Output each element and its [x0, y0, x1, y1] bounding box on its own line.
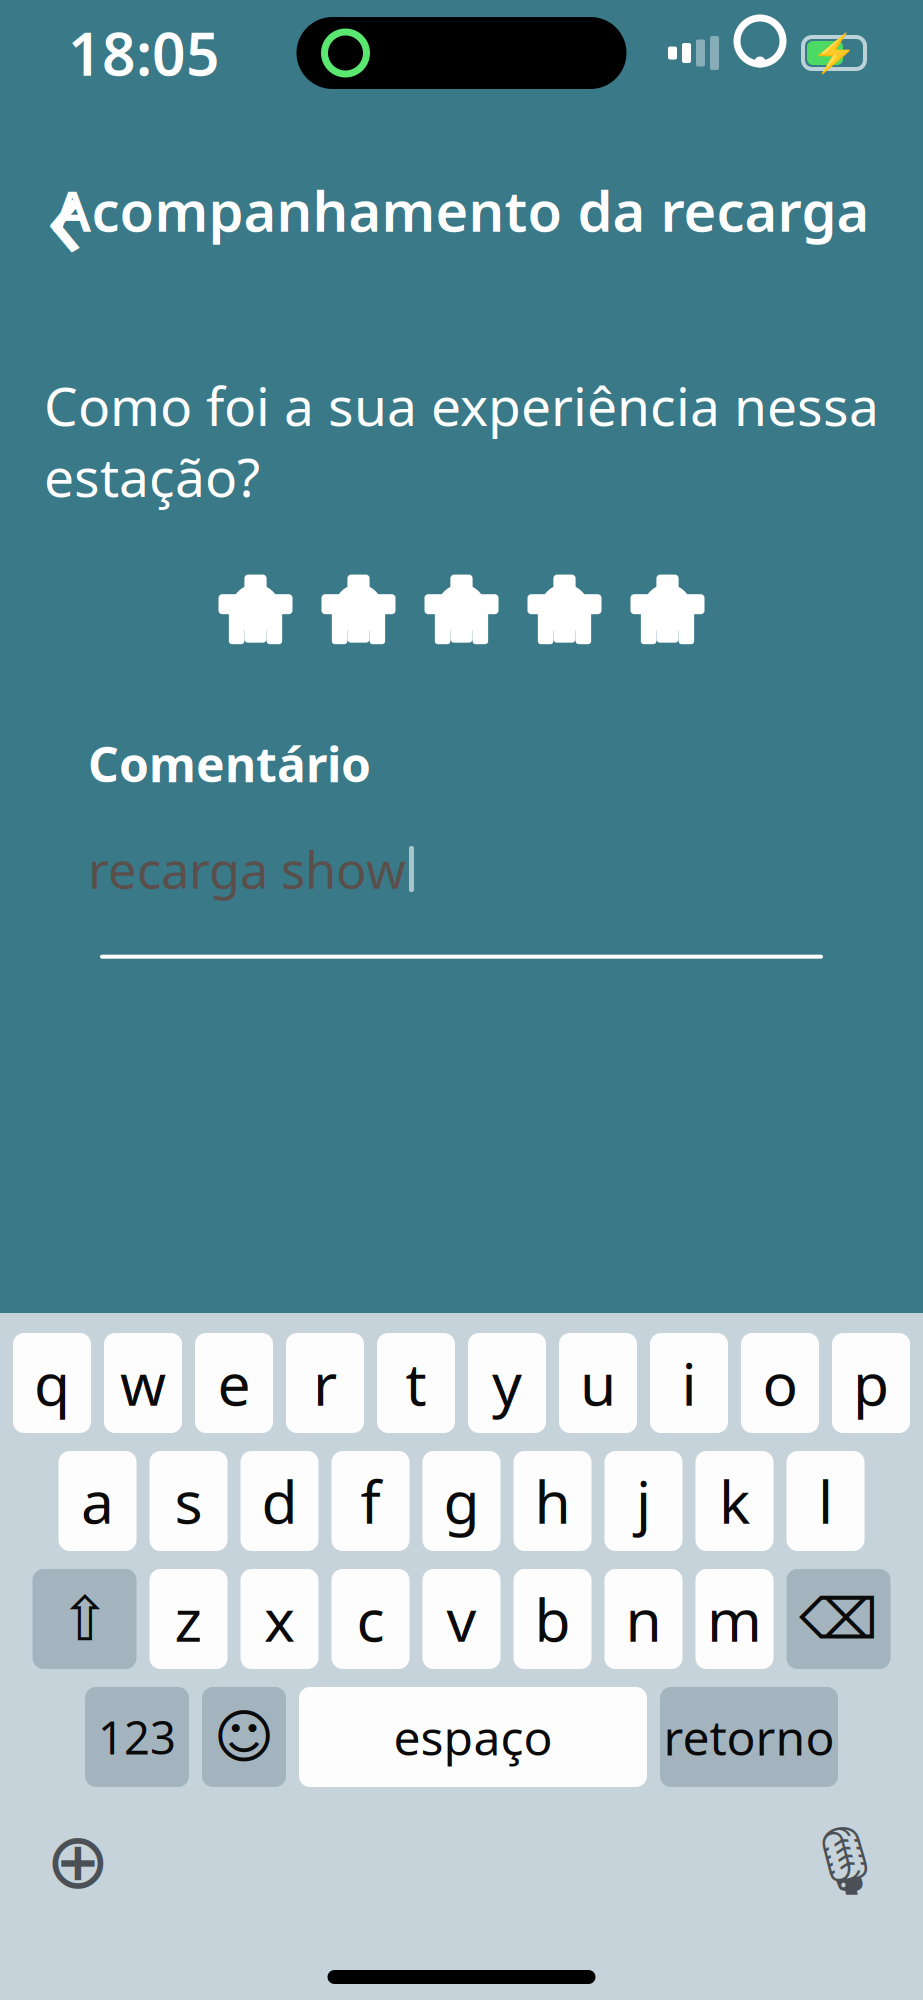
button[interactable]: h	[513, 1451, 591, 1551]
staticText: j	[636, 1462, 651, 1540]
staticText: ⌫	[799, 1587, 878, 1651]
staticText: q	[34, 1344, 70, 1422]
button[interactable]: c	[331, 1569, 409, 1669]
button[interactable]: Maiúsculas	[32, 1569, 136, 1669]
button[interactable]: Ditado	[805, 1821, 885, 1901]
button[interactable]: v	[422, 1569, 500, 1669]
button[interactable]: y	[468, 1333, 546, 1433]
staticText: v	[446, 1580, 476, 1658]
button[interactable]: l	[786, 1451, 864, 1551]
staticText: k	[719, 1462, 750, 1540]
staticText: ⚡	[811, 32, 857, 74]
staticText: p	[853, 1344, 889, 1422]
button[interactable]: 2 estrelas	[321, 572, 395, 646]
button[interactable]: t	[377, 1333, 455, 1433]
button[interactable]: Apagar	[786, 1569, 890, 1669]
button[interactable]: m	[695, 1569, 773, 1669]
button[interactable]: Voltar	[22, 167, 108, 253]
staticText: y	[492, 1344, 522, 1422]
staticText: h	[534, 1462, 570, 1540]
staticText: g	[443, 1462, 479, 1540]
button[interactable]: recarga show	[0, 795, 923, 903]
staticText: Como foi a sua experiência nessa estação…	[44, 370, 879, 512]
staticText: 123	[98, 1707, 176, 1767]
button[interactable]: Mudar idioma	[38, 1821, 118, 1901]
button[interactable]: 4 estrelas	[527, 572, 601, 646]
button[interactable]: k	[695, 1451, 773, 1551]
staticText: x	[264, 1580, 295, 1658]
staticText: z	[174, 1580, 202, 1658]
button[interactable]: f	[331, 1451, 409, 1551]
button[interactable]: s	[149, 1451, 227, 1551]
staticText: n	[625, 1580, 661, 1658]
staticText: b	[534, 1580, 570, 1658]
button[interactable]: 1 estrela	[218, 572, 292, 646]
staticText: ☺	[213, 1704, 274, 1770]
staticText: 18:05	[68, 14, 220, 92]
button[interactable]: i	[650, 1333, 728, 1433]
staticText: l	[818, 1462, 833, 1540]
staticText: Comentário	[88, 732, 371, 795]
staticText: ⇧	[59, 1584, 110, 1654]
button[interactable]: Emoji	[202, 1687, 286, 1787]
staticText: retorno	[663, 1705, 834, 1769]
button[interactable]: espaço	[299, 1687, 647, 1787]
staticText: 🎙	[802, 1823, 887, 1899]
button[interactable]: z	[149, 1569, 227, 1669]
staticText: w	[120, 1344, 166, 1422]
staticText: f	[360, 1462, 380, 1540]
staticText: m	[707, 1580, 762, 1658]
button[interactable]: x	[240, 1569, 318, 1669]
staticText: t	[405, 1344, 426, 1422]
button[interactable]: r	[286, 1333, 364, 1433]
button[interactable]: retorno	[660, 1687, 838, 1787]
staticText: ‹	[45, 125, 85, 295]
staticText: espaço	[393, 1705, 552, 1769]
staticText: c	[356, 1580, 384, 1658]
button[interactable]: j	[604, 1451, 682, 1551]
button[interactable]: b	[513, 1569, 591, 1669]
staticText: ⊕	[45, 1817, 110, 1905]
staticText: r	[313, 1344, 337, 1422]
button[interactable]: 123	[85, 1687, 189, 1787]
button[interactable]: p	[832, 1333, 910, 1433]
button[interactable]: n	[604, 1569, 682, 1669]
button[interactable]: e	[195, 1333, 273, 1433]
button[interactable]: a	[58, 1451, 136, 1551]
staticText: a	[81, 1462, 114, 1540]
button[interactable]: g	[422, 1451, 500, 1551]
button[interactable]: q	[13, 1333, 91, 1433]
button[interactable]: o	[741, 1333, 819, 1433]
staticText: s	[174, 1462, 202, 1540]
staticText: u	[580, 1344, 616, 1422]
staticText: e	[217, 1344, 250, 1422]
staticText: o	[762, 1344, 797, 1422]
button[interactable]: d	[240, 1451, 318, 1551]
button[interactable]: 5 estrelas	[630, 572, 704, 646]
button[interactable]: u	[559, 1333, 637, 1433]
staticText: Acompanhamento da recarga	[53, 173, 869, 247]
staticText: d	[261, 1462, 297, 1540]
staticText: recarga show	[88, 835, 406, 903]
button[interactable]: 3 estrelas	[424, 572, 498, 646]
staticText: i	[681, 1344, 696, 1422]
button[interactable]: w	[104, 1333, 182, 1433]
